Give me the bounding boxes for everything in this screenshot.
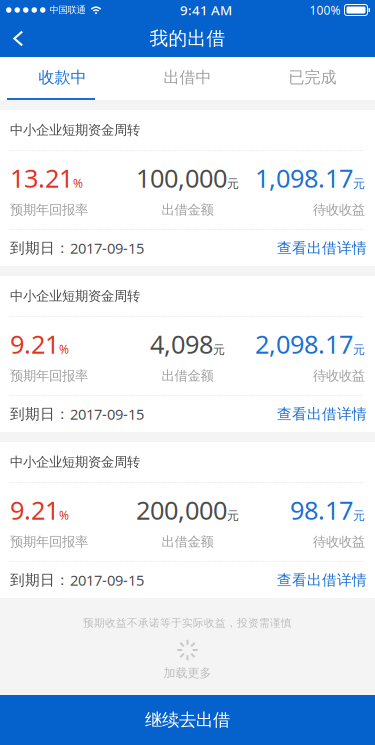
- staticText: 2,098.17: [255, 327, 353, 361]
- staticText: 100%: [309, 2, 340, 18]
- staticText: 收款中: [38, 68, 86, 87]
- staticText: 9.21: [10, 327, 59, 361]
- staticText: 元: [227, 508, 239, 523]
- staticText: 预期年回报率: [10, 202, 88, 218]
- button[interactable]: 继续去出借: [0, 695, 375, 745]
- button[interactable]: 已完成: [250, 57, 375, 98]
- staticText: 待收收益: [313, 534, 365, 550]
- button[interactable]: 出借中: [125, 57, 250, 98]
- staticText: 到期日：: [10, 239, 70, 257]
- staticText: 预期年回报率: [10, 534, 88, 550]
- staticText: 预期收益不承诺等于实际收益，投资需谨慎: [83, 616, 292, 629]
- staticText: 我的出借: [149, 27, 225, 50]
- staticText: 出借金额: [161, 202, 213, 218]
- staticText: %: [73, 175, 83, 191]
- staticText: %: [59, 507, 69, 523]
- staticText: 元: [353, 176, 365, 191]
- staticText: 98.17: [290, 493, 353, 527]
- staticText: 预期年回报率: [10, 368, 88, 384]
- staticText: 查看出借详情: [277, 571, 367, 589]
- button[interactable]: 收款中: [0, 57, 125, 98]
- staticText: 元: [353, 508, 365, 523]
- staticText: 到期日：: [10, 405, 70, 423]
- staticText: 加载更多: [163, 666, 211, 680]
- staticText: 4,098: [150, 327, 213, 361]
- staticText: 元: [213, 342, 225, 357]
- staticText: 中小企业短期资金周转: [10, 288, 140, 304]
- staticText: 2017-09-15: [70, 404, 144, 424]
- staticText: 9:41 AM: [180, 1, 232, 19]
- staticText: 200,000: [136, 493, 227, 527]
- button[interactable]: 中小企业短期资金周转: [0, 442, 375, 598]
- staticText: 查看出借详情: [277, 239, 367, 257]
- staticText: 1,098.17: [255, 161, 353, 195]
- staticText: 中小企业短期资金周转: [10, 122, 140, 138]
- button[interactable]: 加载更多: [0, 663, 375, 683]
- staticText: 元: [227, 176, 239, 191]
- staticText: 出借中: [163, 68, 211, 87]
- staticText: 9.21: [10, 493, 59, 527]
- staticText: 继续去出借: [145, 709, 230, 731]
- button[interactable]: 返回: [0, 20, 44, 57]
- staticText: %: [59, 341, 69, 357]
- staticText: 出借金额: [161, 534, 213, 550]
- staticText: 中小企业短期资金周转: [10, 454, 140, 470]
- staticText: 出借金额: [161, 368, 213, 384]
- staticText: 2017-09-15: [70, 570, 144, 590]
- staticText: 查看出借详情: [277, 405, 367, 423]
- staticText: 13.21: [10, 161, 73, 195]
- button[interactable]: 中小企业短期资金周转: [0, 276, 375, 432]
- button[interactable]: 中小企业短期资金周转: [0, 110, 375, 266]
- staticText: 待收收益: [313, 202, 365, 218]
- staticText: 100,000: [136, 161, 227, 195]
- staticText: 已完成: [288, 68, 336, 87]
- staticText: 2017-09-15: [70, 238, 144, 258]
- staticText: 到期日：: [10, 571, 70, 589]
- staticText: 中国联通: [49, 4, 85, 16]
- staticText: 元: [353, 342, 365, 357]
- staticText: 待收收益: [313, 368, 365, 384]
